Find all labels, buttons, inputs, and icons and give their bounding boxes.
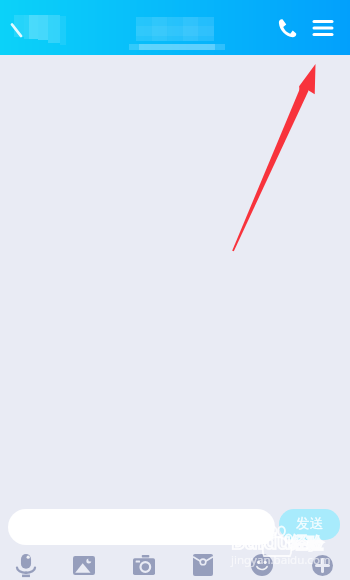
button[interactable]: Back: [2, 11, 36, 45]
button[interactable]: Emoji: [238, 547, 286, 580]
button[interactable]: Camera: [120, 547, 168, 580]
staticText: 发送: [296, 515, 323, 532]
staticText: jingyan.baidu.com: [231, 552, 331, 568]
button[interactable]: Voice: [2, 547, 50, 580]
button[interactable]: Photo: [60, 547, 108, 580]
button[interactable]: More: [298, 547, 346, 580]
button[interactable]: Menu: [302, 7, 344, 49]
staticText: 经验: [291, 534, 323, 554]
button[interactable]: Gift: [179, 547, 227, 580]
button[interactable]: [8, 509, 275, 545]
button[interactable]: 发送: [279, 509, 340, 540]
button[interactable]: Call: [266, 7, 308, 49]
staticText: Baidu: [231, 527, 291, 556]
